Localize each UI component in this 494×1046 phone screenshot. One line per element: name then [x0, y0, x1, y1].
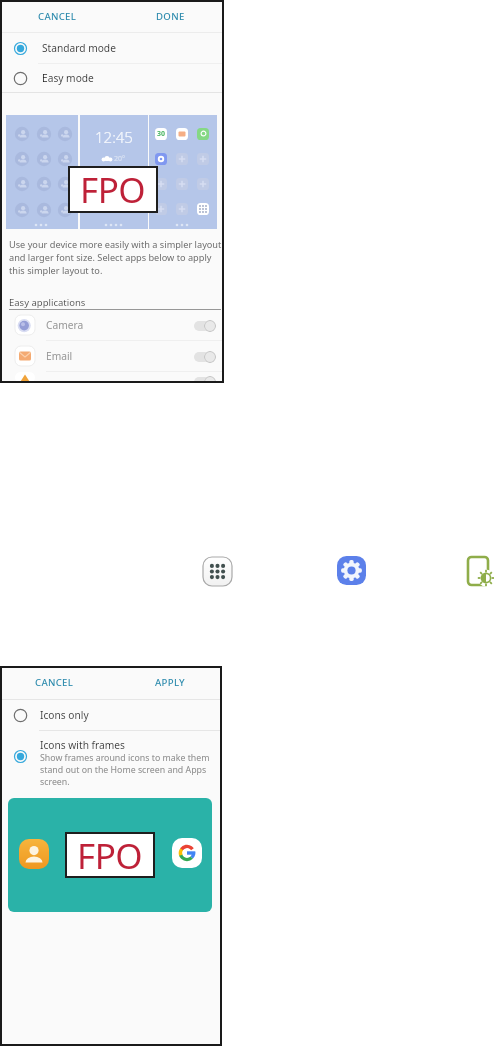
staticText: Camera [46, 318, 84, 332]
staticText: DONE [156, 10, 185, 23]
button[interactable]: Icons only [0, 700, 222, 730]
staticText: CANCEL [35, 676, 74, 689]
staticText: Use your device more easily with a simpl… [9, 238, 222, 277]
button[interactable]: CANCEL [38, 10, 77, 23]
staticText: Icons with frames [40, 738, 125, 752]
staticText: FPO [80, 166, 146, 213]
staticText: Icons only [40, 708, 89, 722]
button[interactable] [203, 557, 232, 586]
button[interactable]: Easy mode [0, 64, 224, 92]
button[interactable]: DONE [156, 10, 185, 23]
button[interactable]: APPLY [155, 676, 185, 689]
staticText: CANCEL [38, 10, 77, 23]
button[interactable] [337, 556, 366, 585]
staticText: Standard mode [42, 41, 116, 55]
staticText: Email [46, 349, 73, 363]
staticText: APPLY [155, 676, 185, 689]
button[interactable] [466, 553, 494, 587]
staticText: Easy mode [42, 71, 94, 85]
staticText: 12:45 [95, 127, 133, 147]
button[interactable]: CANCEL [35, 676, 74, 689]
button[interactable]: Email [0, 341, 224, 371]
staticText: Show frames around icons to make them st… [40, 752, 210, 788]
staticText: 20° [114, 154, 126, 164]
button[interactable]: Icons with frames [0, 731, 222, 793]
staticText: FPO [77, 832, 143, 878]
staticText: 30 [157, 129, 166, 139]
button[interactable]: Standard mode [0, 33, 224, 63]
button[interactable]: Camera [0, 310, 224, 340]
staticText: Easy applications [9, 296, 86, 309]
